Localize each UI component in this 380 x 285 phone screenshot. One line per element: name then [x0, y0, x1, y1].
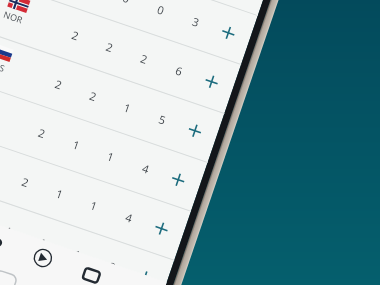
button[interactable]: Add medal	[176, 113, 214, 151]
button[interactable]: Back	[24, 239, 62, 277]
button[interactable]: Recent apps	[73, 257, 111, 285]
button[interactable]: Add medal	[158, 162, 196, 200]
button[interactable]: Add medal	[212, 18, 250, 56]
button[interactable]: Add medal	[194, 64, 232, 102]
button[interactable]: Add medal	[140, 210, 178, 248]
